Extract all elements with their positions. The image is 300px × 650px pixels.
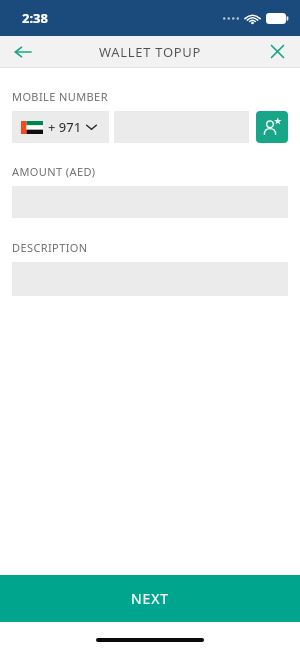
button[interactable]: Close bbox=[254, 36, 300, 67]
button[interactable]: NEXT bbox=[0, 575, 300, 622]
staticText: AMOUNT (AED) bbox=[12, 164, 96, 179]
staticText: NEXT bbox=[131, 589, 170, 608]
staticText: MOBILE NUMBER bbox=[12, 89, 108, 104]
staticText: + 971 bbox=[48, 118, 82, 136]
button[interactable]: Pick contact bbox=[256, 111, 288, 143]
button[interactable]: Back bbox=[0, 36, 46, 67]
staticText: 2:38 bbox=[22, 9, 48, 27]
staticText: WALLET TOPUP bbox=[99, 43, 202, 61]
button[interactable]: + 971 bbox=[12, 111, 109, 143]
staticText: DESCRIPTION bbox=[12, 240, 88, 255]
